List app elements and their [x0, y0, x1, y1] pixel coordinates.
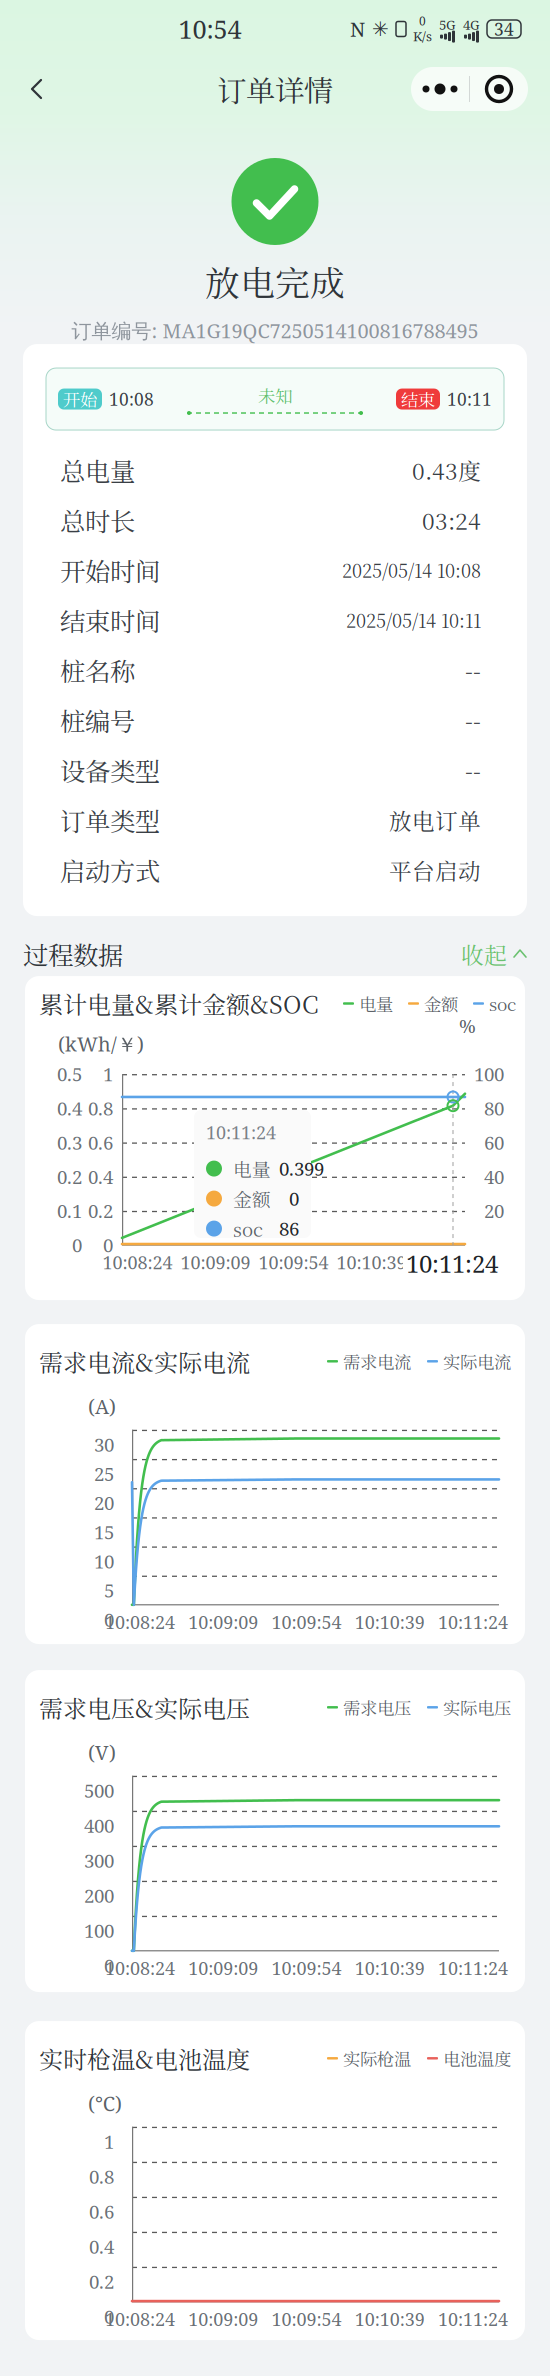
- staticText: 桩编号: [60, 702, 135, 738]
- button[interactable]: 收起: [461, 938, 527, 970]
- staticText: 电池温度: [443, 2046, 511, 2071]
- staticText: 总时长: [60, 502, 135, 538]
- staticText: 4G: [463, 15, 480, 34]
- staticText: 25: [94, 1461, 114, 1486]
- staticText: 400: [84, 1813, 114, 1838]
- staticText: 10:09:09: [180, 1250, 250, 1275]
- staticText: 0.3: [57, 1130, 82, 1155]
- staticText: 200: [84, 1883, 114, 1908]
- staticText: 累计电量&累计金额&SOC: [39, 986, 319, 1021]
- staticText: 30: [94, 1432, 114, 1457]
- staticText: 60: [484, 1130, 504, 1155]
- staticText: 0.2: [88, 1198, 113, 1223]
- staticText: 300: [84, 1848, 114, 1873]
- staticText: 0.399: [279, 1156, 324, 1181]
- staticText: 0.8: [89, 2164, 114, 2189]
- staticText: 桩名称: [60, 652, 135, 688]
- staticText: 34: [494, 17, 514, 41]
- staticText: 10:08:24: [102, 1250, 172, 1275]
- staticText: --: [465, 704, 481, 736]
- staticText: 需求电压&实际电压: [39, 1690, 250, 1725]
- staticText: 10:11:24: [438, 1956, 508, 1980]
- staticText: 1: [104, 2129, 114, 2154]
- button[interactable]: Close: [470, 67, 528, 111]
- staticText: 0.2: [89, 2269, 114, 2294]
- staticText: 金额: [424, 991, 458, 1016]
- staticText: 100: [84, 1918, 114, 1943]
- staticText: 放电订单: [389, 804, 481, 836]
- staticText: 0.1: [57, 1198, 82, 1223]
- staticText: 结束时间: [60, 602, 160, 638]
- staticText: 80: [484, 1095, 504, 1121]
- staticText: 1: [103, 1061, 113, 1087]
- staticText: 500: [84, 1778, 114, 1803]
- staticText: 未知: [258, 383, 292, 408]
- staticText: (℃): [88, 2089, 122, 2117]
- staticText: 10:09:09: [188, 1610, 258, 1634]
- button[interactable]: More: [411, 67, 469, 111]
- staticText: 0.2: [57, 1164, 82, 1189]
- staticText: 需求电流&实际电流: [39, 1344, 250, 1379]
- staticText: --: [465, 754, 481, 786]
- staticText: (kWh/￥): [58, 1030, 144, 1057]
- staticText: 10:11: [447, 387, 492, 411]
- staticText: 启动方式: [60, 852, 160, 888]
- staticText: 10:08:24: [105, 1956, 175, 1980]
- staticText: 订单详情: [217, 68, 333, 110]
- staticText: 10:09:54: [271, 1956, 341, 1980]
- staticText: 15: [94, 1519, 114, 1545]
- staticText: 2025/05/14 10:08: [342, 557, 481, 583]
- staticText: 0.6: [88, 1130, 113, 1155]
- staticText: 03:24: [422, 504, 481, 536]
- staticText: 10:09:09: [188, 2307, 258, 2331]
- staticText: 0.4: [89, 2234, 114, 2259]
- staticText: 10: [94, 1548, 114, 1574]
- staticText: ✳: [372, 17, 389, 41]
- staticText: 0: [104, 1607, 114, 1632]
- staticText: 10:09:09: [188, 1956, 258, 1980]
- staticText: 10:54: [178, 12, 241, 46]
- staticText: 实际枪温: [343, 2046, 411, 2071]
- staticText: 0: [289, 1186, 299, 1211]
- staticText: K/s: [413, 27, 432, 45]
- staticText: 0.8: [88, 1095, 113, 1121]
- staticText: 10:11:24: [406, 1247, 498, 1280]
- staticText: soc: [489, 991, 516, 1016]
- staticText: 0.4: [88, 1164, 113, 1189]
- staticText: 10:11:24: [206, 1120, 276, 1145]
- staticText: 0: [104, 1953, 114, 1978]
- staticText: 40: [484, 1164, 504, 1189]
- staticText: 0.6: [89, 2199, 114, 2224]
- staticText: 0: [72, 1232, 82, 1258]
- staticText: %: [459, 1013, 476, 1038]
- staticText: 电量: [233, 1155, 271, 1182]
- staticText: 20: [484, 1198, 504, 1223]
- staticText: 10:08:24: [105, 1610, 175, 1634]
- staticText: 实际电压: [443, 1695, 511, 1720]
- staticText: 结束: [401, 387, 435, 411]
- staticText: soc: [233, 1215, 263, 1242]
- staticText: 10:09:54: [271, 1610, 341, 1634]
- staticText: 平台启动: [389, 854, 481, 886]
- staticText: 100: [474, 1061, 504, 1087]
- staticText: 10:10:39: [336, 1250, 406, 1275]
- staticText: 实际电流: [443, 1349, 511, 1374]
- staticText: 需求电压: [343, 1695, 411, 1720]
- staticText: 10:09:54: [271, 2307, 341, 2331]
- staticText: (A): [88, 1392, 116, 1420]
- staticText: 0: [103, 1232, 113, 1258]
- staticText: 过程数据: [23, 936, 123, 972]
- staticText: 0: [419, 13, 426, 29]
- staticText: 金额: [233, 1185, 271, 1212]
- staticText: 实时枪温&电池温度: [39, 2041, 250, 2076]
- staticText: 10:10:39: [355, 1956, 425, 1980]
- staticText: N: [350, 15, 365, 43]
- staticText: 0.4: [57, 1095, 82, 1121]
- staticText: (V): [88, 1738, 116, 1766]
- staticText: 订单编号: MA1G19QC7250514100816788495: [71, 317, 478, 344]
- staticText: 10:11:24: [438, 2307, 508, 2331]
- staticText: 20: [94, 1490, 114, 1516]
- button[interactable]: Back: [10, 65, 64, 113]
- staticText: 10:11:24: [414, 1250, 484, 1275]
- staticText: 开始时间: [60, 552, 160, 588]
